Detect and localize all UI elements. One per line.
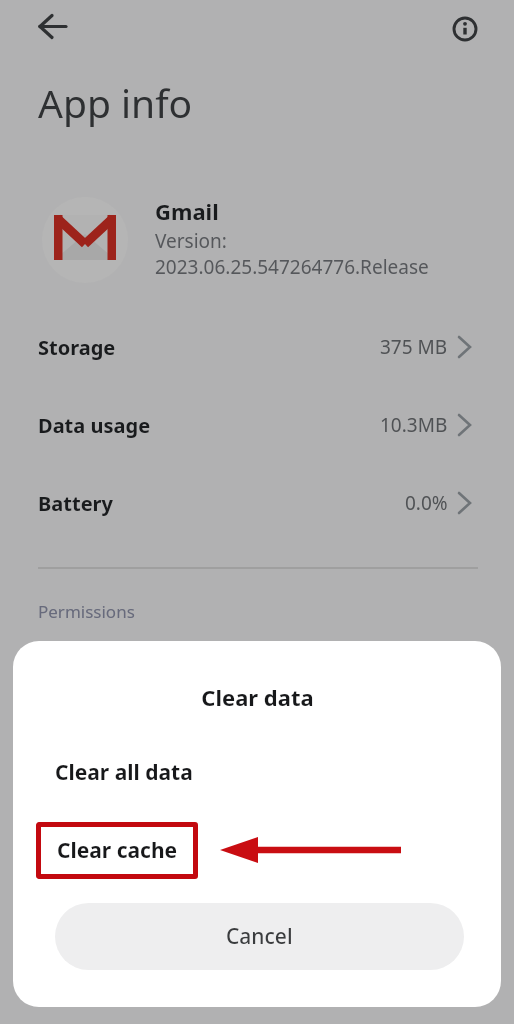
staticText: 0.0% — [405, 490, 448, 516]
staticText: Clear data — [201, 682, 314, 712]
staticText: App info — [38, 76, 193, 129]
staticText: 10.3MB — [380, 412, 448, 438]
button[interactable]: Clear all data — [13, 744, 501, 800]
staticText: Clear all data — [55, 758, 193, 787]
button[interactable]: Clear cache — [36, 822, 198, 879]
button[interactable]: Storage — [0, 317, 514, 377]
staticText: 375 MB — [380, 334, 448, 360]
button[interactable]: Battery — [0, 473, 514, 533]
staticText: Version: 2023.06.25.547264776.Release — [155, 228, 429, 280]
button[interactable] — [30, 6, 78, 50]
button[interactable] — [443, 7, 487, 51]
button[interactable]: Data usage — [0, 395, 514, 455]
button[interactable]: Cancel — [55, 903, 464, 970]
staticText: Cancel — [226, 922, 293, 951]
staticText: Battery — [38, 490, 113, 517]
staticText: Permissions — [38, 600, 135, 623]
staticText: Clear cache — [57, 836, 178, 865]
staticText: Gmail — [155, 196, 219, 226]
staticText: Storage — [38, 334, 116, 361]
staticText: Data usage — [38, 412, 151, 439]
